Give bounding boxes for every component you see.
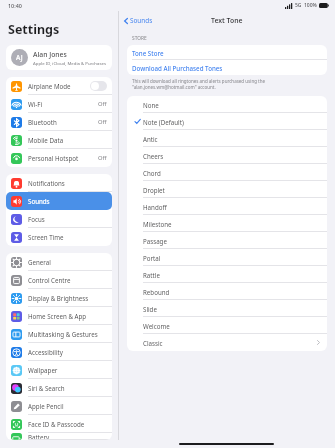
staticText: AJ: [16, 53, 23, 62]
button[interactable]: Screen Time: [6, 228, 112, 246]
button[interactable]: Welcome: [127, 317, 327, 334]
button[interactable]: Accessibility: [6, 343, 112, 361]
button[interactable]: Cheers: [127, 147, 327, 164]
button[interactable]: Rattle: [127, 266, 327, 283]
staticText: Notifications: [28, 179, 65, 187]
button[interactable]: Mobile Data: [6, 131, 112, 149]
button[interactable]: Apple Pencil: [6, 397, 112, 415]
button[interactable]: Siri & Search: [6, 379, 112, 397]
staticText: Rattle: [143, 271, 160, 279]
staticText: Chord: [143, 169, 161, 177]
staticText: Milestone: [143, 220, 172, 228]
button[interactable]: Focus: [6, 210, 112, 228]
staticText: Accessibility: [28, 348, 63, 356]
staticText: Control Centre: [28, 276, 71, 284]
staticText: Bluetooth: [28, 118, 57, 126]
button[interactable]: None: [127, 96, 327, 113]
staticText: Antic: [143, 135, 158, 143]
button[interactable]: General: [6, 253, 112, 271]
button[interactable]: Home Screen & App Library: [6, 307, 112, 325]
staticText: Apple Pencil: [28, 402, 64, 410]
staticText: 100%: [304, 2, 317, 9]
staticText: Settings: [8, 21, 60, 38]
button[interactable]: Slide: [127, 300, 327, 317]
staticText: STORE: [132, 35, 147, 42]
staticText: This will download all ringtones and ale…: [132, 78, 266, 90]
button[interactable]: Wallpaper: [6, 361, 112, 379]
staticText: Home Screen & App Library: [28, 312, 107, 320]
staticText: General: [28, 258, 51, 266]
staticText: Off: [98, 154, 107, 162]
button[interactable]: Control Centre: [6, 271, 112, 289]
staticText: Welcome: [143, 322, 170, 330]
staticText: Off: [98, 118, 107, 126]
button[interactable]: Classic: [127, 334, 327, 351]
staticText: 10:40: [8, 2, 22, 9]
staticText: Wallpaper: [28, 366, 58, 374]
staticText: Display & Brightness: [28, 294, 89, 302]
button[interactable]: Tone Store: [127, 45, 327, 60]
button[interactable]: Personal Hotspot: [6, 149, 112, 167]
button[interactable]: Notifications: [6, 174, 112, 192]
staticText: Alan Jones: [33, 50, 67, 59]
button[interactable]: Display & Brightness: [6, 289, 112, 307]
button[interactable]: Passage: [127, 232, 327, 249]
staticText: Face ID & Passcode: [28, 420, 85, 428]
staticText: Note (Default): [143, 118, 184, 126]
staticText: Airplane Mode: [28, 82, 71, 90]
button[interactable]: Chord: [127, 164, 327, 181]
staticText: 5G: [295, 2, 302, 9]
button[interactable]: Wi-Fi: [6, 95, 112, 113]
button[interactable]: Download All Purchased Tones: [127, 60, 327, 75]
button[interactable]: Face ID & Passcode: [6, 415, 112, 433]
button[interactable]: Milestone: [127, 215, 327, 232]
button[interactable]: Droplet: [127, 181, 327, 198]
staticText: Text Tone: [211, 16, 243, 25]
staticText: Portal: [143, 254, 161, 262]
staticText: Personal Hotspot: [28, 154, 79, 162]
button[interactable]: Airplane Mode: [6, 77, 112, 95]
button[interactable]: Portal: [127, 249, 327, 266]
button[interactable]: Antic: [127, 130, 327, 147]
staticText: Off: [98, 100, 107, 108]
button[interactable]: Multitasking & Gestures: [6, 325, 112, 343]
button[interactable]: Sounds: [119, 13, 157, 28]
staticText: Focus: [28, 215, 45, 223]
staticText: None: [143, 101, 159, 109]
button[interactable]: Bluetooth: [6, 113, 112, 131]
staticText: Sounds: [130, 16, 153, 25]
staticText: Screen Time: [28, 233, 64, 241]
staticText: Sounds: [28, 197, 50, 205]
staticText: Siri & Search: [28, 384, 65, 392]
staticText: Classic: [143, 339, 163, 347]
staticText: Rebound: [143, 288, 170, 296]
staticText: Cheers: [143, 152, 164, 160]
staticText: Mobile Data: [28, 136, 64, 144]
button[interactable]: Note (Default): [127, 113, 327, 130]
staticText: Slide: [143, 305, 157, 313]
button[interactable]: AJ: [6, 45, 112, 70]
button[interactable]: Sounds: [6, 192, 112, 210]
staticText: Handoff: [143, 203, 167, 211]
staticText: Tone Store: [132, 49, 164, 57]
staticText: Battery: [28, 433, 50, 440]
staticText: Download All Purchased Tones: [132, 64, 223, 72]
staticText: Apple ID, iCloud, Media & Purchases: [33, 60, 106, 66]
button[interactable]: Handoff: [127, 198, 327, 215]
staticText: Multitasking & Gestures: [28, 330, 98, 338]
staticText: Wi-Fi: [28, 100, 43, 108]
button[interactable]: Rebound: [127, 283, 327, 300]
staticText: Passage: [143, 237, 167, 245]
staticText: Droplet: [143, 186, 165, 194]
button[interactable]: Battery: [6, 433, 112, 440]
